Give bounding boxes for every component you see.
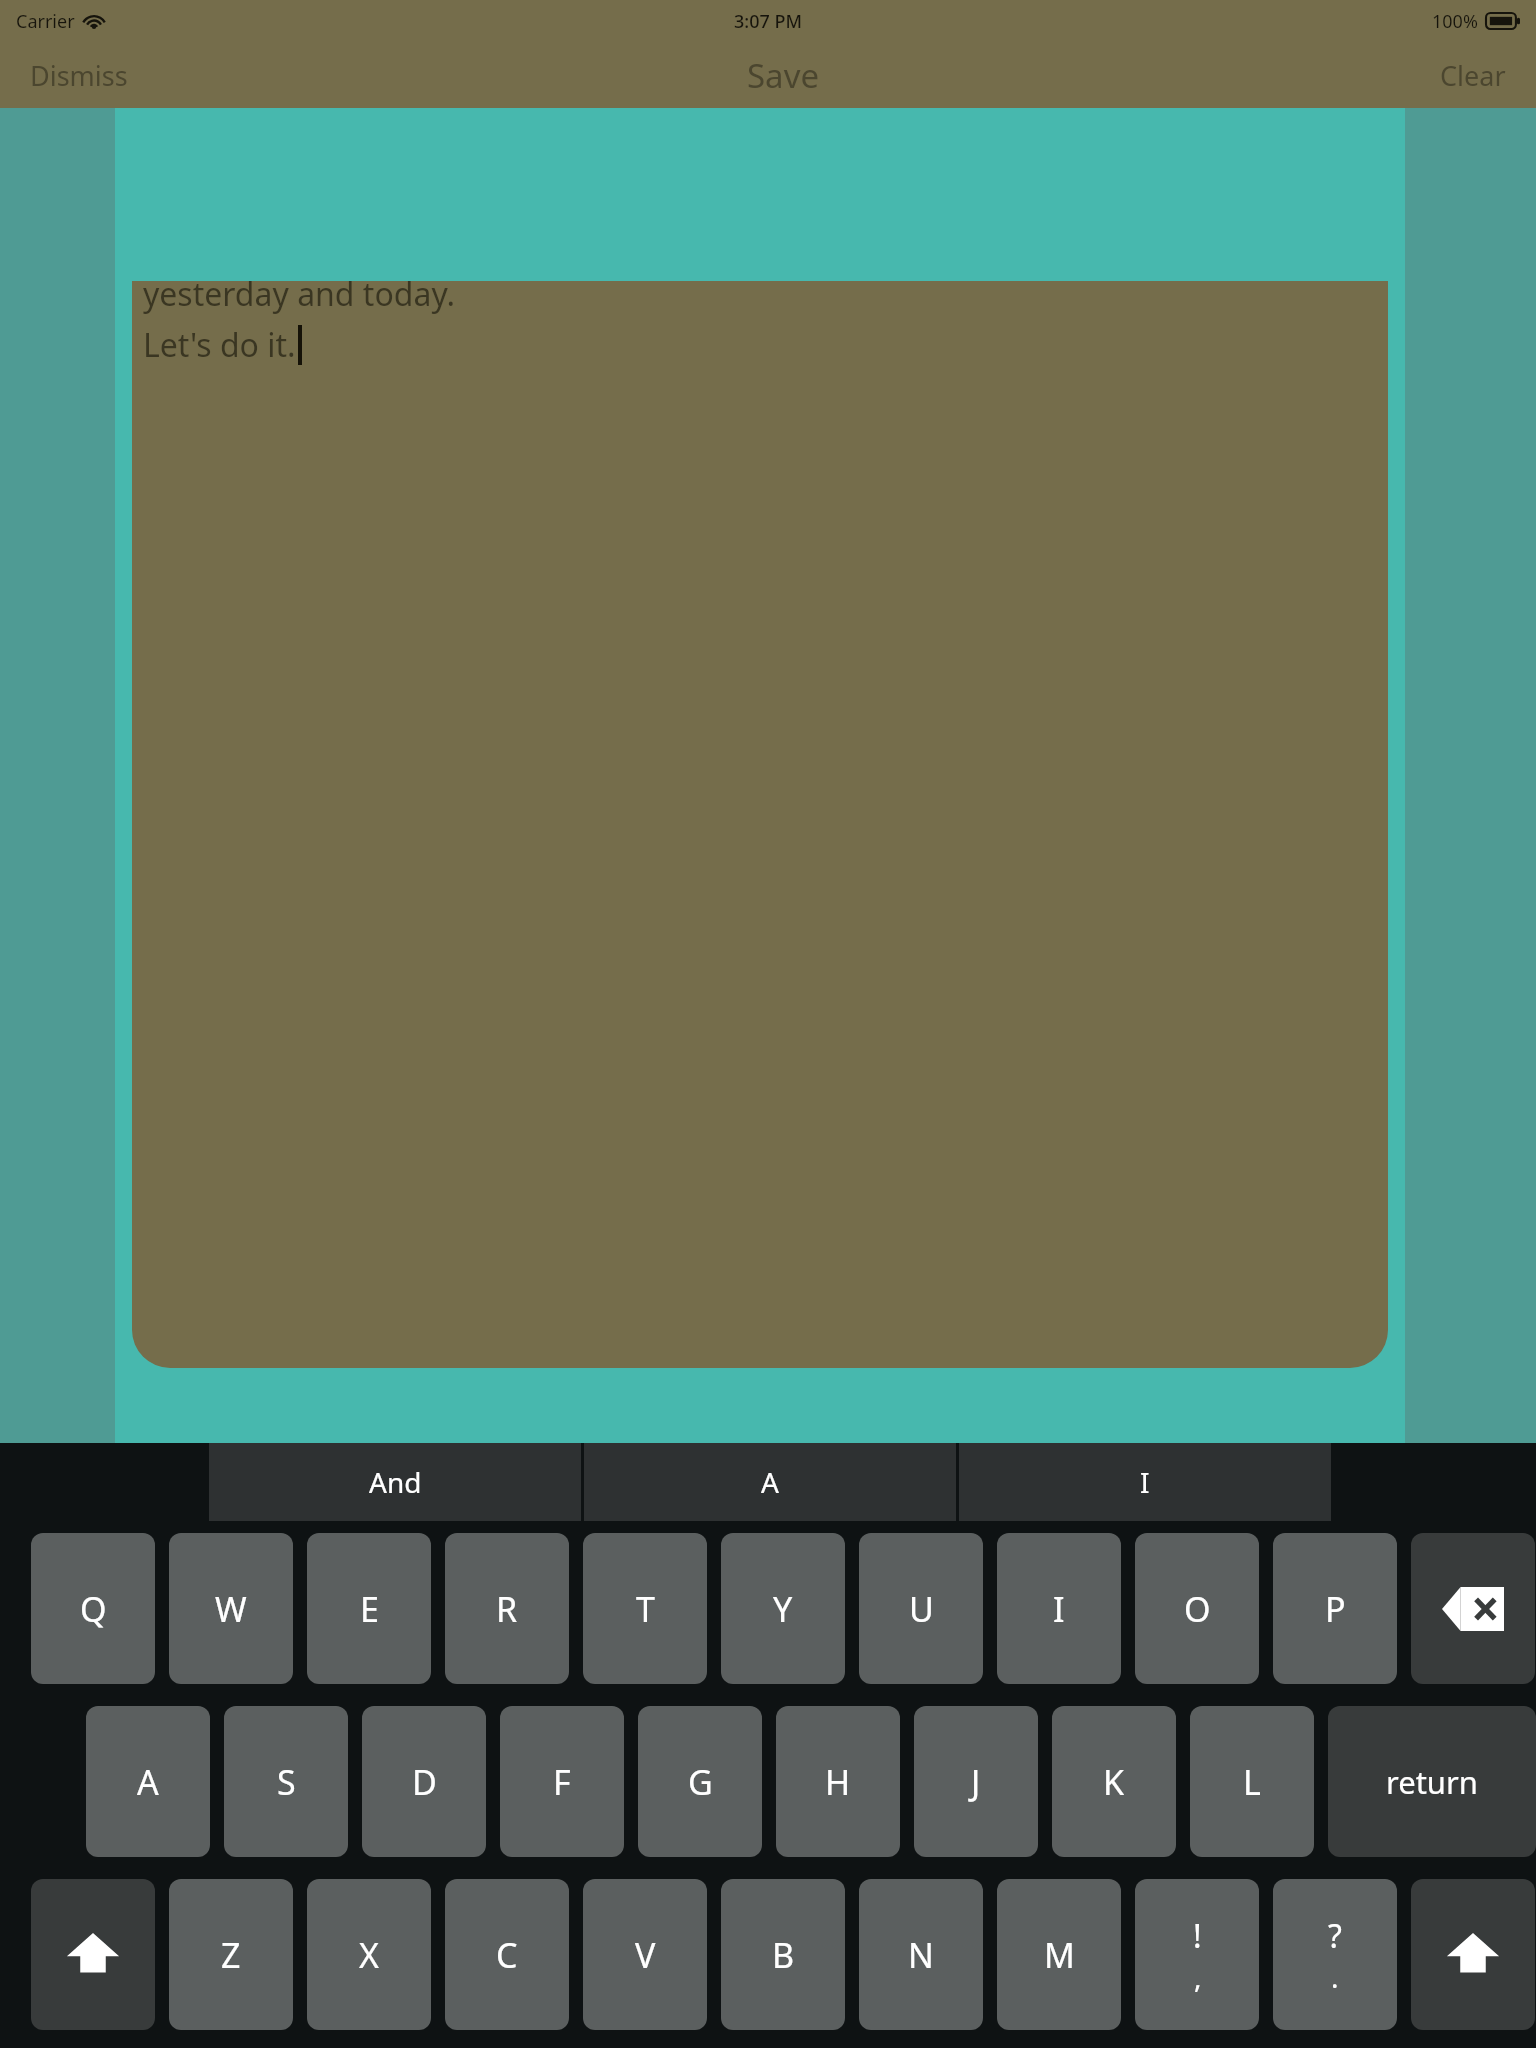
button[interactable]: O xyxy=(1135,1533,1259,1684)
staticText: Save xyxy=(747,53,820,98)
staticText: ! xyxy=(1193,1914,1202,1958)
staticText: T xyxy=(636,1586,655,1632)
button[interactable]: J xyxy=(914,1706,1038,1857)
button[interactable]: ? xyxy=(1273,1879,1397,2030)
button[interactable]: Shift xyxy=(1411,1879,1535,2030)
staticText: N xyxy=(908,1932,934,1978)
staticText: Carrier xyxy=(16,9,75,34)
staticText: 100% xyxy=(1432,9,1478,34)
button[interactable]: Clear xyxy=(1416,49,1536,102)
staticText: U xyxy=(909,1586,934,1632)
button[interactable]: Y xyxy=(721,1533,845,1684)
button[interactable]: A xyxy=(86,1706,210,1857)
button[interactable]: S xyxy=(224,1706,348,1857)
button[interactable]: E xyxy=(307,1533,431,1684)
button[interactable]: F xyxy=(500,1706,624,1857)
button[interactable]: return xyxy=(1328,1706,1536,1857)
staticText: A xyxy=(761,1463,779,1501)
staticText: return xyxy=(1386,1761,1478,1803)
button[interactable]: B xyxy=(721,1879,845,2030)
staticText: I xyxy=(1053,1586,1065,1632)
staticText: Dismiss xyxy=(30,57,128,94)
button[interactable]: ! xyxy=(1135,1879,1259,2030)
staticText: C xyxy=(496,1932,518,1978)
button[interactable]: And xyxy=(209,1443,581,1521)
staticText: Z xyxy=(221,1932,241,1978)
button[interactable]: D xyxy=(362,1706,486,1857)
button[interactable]: T xyxy=(583,1533,707,1684)
button[interactable]: Z xyxy=(169,1879,293,2030)
staticText: , xyxy=(1194,1958,1202,1996)
staticText: A xyxy=(137,1759,159,1805)
staticText: S xyxy=(277,1759,296,1805)
staticText: G xyxy=(688,1759,713,1805)
staticText: K xyxy=(1103,1759,1125,1805)
button[interactable]: Delete xyxy=(1411,1533,1535,1684)
staticText: And xyxy=(369,1463,422,1501)
button[interactable]: P xyxy=(1273,1533,1397,1684)
button[interactable]: G xyxy=(638,1706,762,1857)
staticText: I xyxy=(1140,1463,1150,1501)
staticText: yesterday and today. xyxy=(143,281,456,314)
staticText: ? xyxy=(1328,1914,1342,1958)
staticText: P xyxy=(1325,1586,1346,1632)
button[interactable]: Q xyxy=(31,1533,155,1684)
staticText: H xyxy=(825,1759,851,1805)
staticText: E xyxy=(360,1586,379,1632)
staticText: O xyxy=(1184,1586,1211,1632)
button[interactable]: W xyxy=(169,1533,293,1684)
button[interactable]: X xyxy=(307,1879,431,2030)
staticText: W xyxy=(215,1586,247,1632)
button[interactable]: Save xyxy=(721,47,846,104)
button[interactable]: I xyxy=(997,1533,1121,1684)
button[interactable]: M xyxy=(997,1879,1121,2030)
button[interactable]: I xyxy=(959,1443,1331,1521)
staticText: J xyxy=(971,1759,981,1805)
staticText: Let's do it. xyxy=(143,323,296,367)
button[interactable]: H xyxy=(776,1706,900,1857)
staticText: Y xyxy=(773,1586,793,1632)
button[interactable]: U xyxy=(859,1533,983,1684)
staticText: . xyxy=(1331,1958,1339,1996)
staticText: D xyxy=(412,1759,437,1805)
staticText: F xyxy=(553,1759,571,1805)
button[interactable]: Dismiss xyxy=(0,49,152,102)
button[interactable]: R xyxy=(445,1533,569,1684)
button[interactable]: V xyxy=(583,1879,707,2030)
button[interactable]: Shift xyxy=(31,1879,155,2030)
button[interactable]: C xyxy=(445,1879,569,2030)
staticText: V xyxy=(635,1932,656,1978)
staticText: 3:07 PM xyxy=(734,9,802,34)
button[interactable]: L xyxy=(1190,1706,1314,1857)
button[interactable]: A xyxy=(584,1443,956,1521)
staticText: R xyxy=(496,1586,518,1632)
staticText: Q xyxy=(80,1586,107,1632)
staticText: B xyxy=(772,1932,795,1978)
button[interactable]: N xyxy=(859,1879,983,2030)
button[interactable]: K xyxy=(1052,1706,1176,1857)
staticText: M xyxy=(1044,1932,1075,1978)
staticText: L xyxy=(1243,1759,1261,1805)
staticText: Clear xyxy=(1440,57,1506,94)
staticText: X xyxy=(359,1932,379,1978)
